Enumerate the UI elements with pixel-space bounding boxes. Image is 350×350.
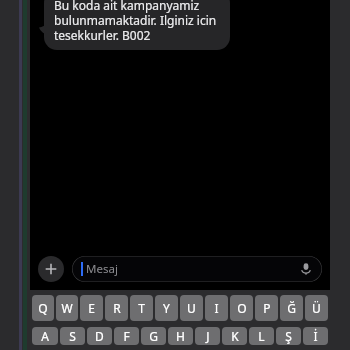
staticText: A — [41, 328, 49, 344]
button[interactable]: İ — [303, 327, 328, 345]
button[interactable]: Ş — [276, 327, 301, 345]
staticText: S — [69, 328, 76, 344]
button[interactable]: H — [168, 327, 193, 345]
staticText: K — [231, 328, 239, 344]
staticText: Mesaj — [86, 261, 118, 277]
button[interactable]: G — [141, 327, 166, 345]
button[interactable]: S — [60, 327, 85, 345]
staticText: U — [187, 300, 196, 316]
staticText: E — [88, 300, 95, 316]
button[interactable]: Mesaj — [72, 256, 322, 282]
staticText: T — [138, 300, 145, 316]
button[interactable]: W — [56, 295, 78, 321]
staticText: H — [176, 328, 185, 344]
staticText: O — [237, 300, 247, 316]
staticText: W — [61, 300, 73, 316]
button[interactable]: Q — [32, 295, 54, 321]
staticText: Q — [38, 300, 48, 316]
staticText: Ğ — [287, 300, 296, 316]
staticText: D — [95, 328, 104, 344]
staticText: F — [123, 328, 130, 344]
staticText: J — [206, 328, 210, 344]
button[interactable]: Ü — [305, 295, 328, 321]
button[interactable]: L — [249, 327, 274, 345]
button[interactable]: K — [222, 327, 247, 345]
button[interactable]: R — [105, 295, 128, 321]
staticText: Bu koda ait kampanyamiz bulunmamaktadir.… — [54, 0, 220, 43]
button[interactable]: P — [255, 295, 278, 321]
button[interactable]: Voice message — [298, 261, 314, 277]
button[interactable]: D — [87, 327, 112, 345]
staticText: R — [113, 300, 121, 316]
button[interactable]: Bu koda ait kampanyamiz bulunmamaktadir.… — [44, 0, 230, 50]
button[interactable]: A — [32, 327, 58, 345]
staticText: I — [214, 300, 219, 316]
button[interactable]: Add attachment — [38, 256, 64, 282]
staticText: Ş — [285, 328, 292, 344]
button[interactable]: F — [114, 327, 139, 345]
staticText: İ — [313, 328, 318, 344]
button[interactable]: T — [130, 295, 153, 321]
button[interactable]: I — [205, 295, 228, 321]
staticText: L — [258, 328, 265, 344]
staticText: Ü — [312, 300, 321, 316]
staticText: P — [263, 300, 271, 316]
button[interactable]: J — [195, 327, 220, 345]
button[interactable]: U — [180, 295, 203, 321]
button[interactable]: Ğ — [280, 295, 303, 321]
button[interactable]: E — [80, 295, 103, 321]
button[interactable]: Y — [155, 295, 178, 321]
staticText: G — [149, 328, 158, 344]
button[interactable]: O — [230, 295, 253, 321]
staticText: Y — [163, 300, 170, 316]
